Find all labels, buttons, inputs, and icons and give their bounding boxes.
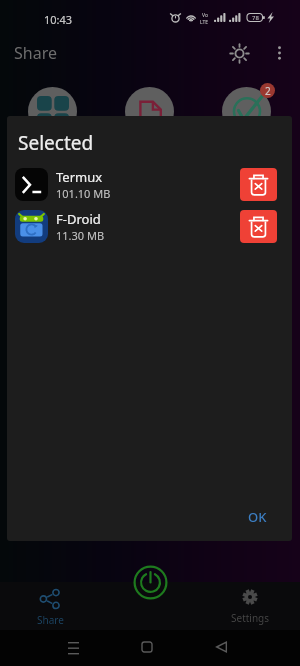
- button[interactable]: App 0: [28, 87, 77, 136]
- button[interactable]: OK: [239, 503, 276, 531]
- staticText: 2: [265, 84, 271, 98]
- button[interactable]: Home: [130, 630, 164, 664]
- staticText: F-Droid: [56, 210, 101, 228]
- staticText: OK: [248, 508, 267, 526]
- staticText: Selected: [18, 130, 94, 156]
- button[interactable]: F-Droid: [7, 205, 292, 247]
- staticText: 10:43: [44, 12, 73, 27]
- staticText: 78: [252, 14, 259, 22]
- button[interactable]: Termux: [7, 163, 292, 205]
- button[interactable]: Brightness: [221, 38, 257, 68]
- staticText: Vo: [202, 12, 208, 19]
- button[interactable]: Share: [10, 582, 90, 630]
- staticText: 11.30 MB: [56, 228, 105, 243]
- button[interactable]: Settings: [210, 582, 290, 630]
- button[interactable]: Back: [204, 630, 238, 664]
- button[interactable]: Delete Termux: [240, 168, 277, 201]
- button[interactable]: Recents: [56, 630, 90, 664]
- staticText: LTE: [200, 19, 209, 26]
- button[interactable]: App 2: [222, 87, 271, 136]
- staticText: Termux: [56, 168, 103, 186]
- button[interactable]: Delete F-Droid: [240, 210, 277, 243]
- staticText: Share: [37, 613, 64, 627]
- button[interactable]: Power: [128, 560, 172, 604]
- staticText: Share: [14, 42, 57, 64]
- button[interactable]: More options: [264, 38, 294, 68]
- button[interactable]: App 1: [125, 87, 174, 136]
- staticText: Settings: [231, 611, 270, 625]
- staticText: 101.10 MB: [56, 186, 111, 201]
